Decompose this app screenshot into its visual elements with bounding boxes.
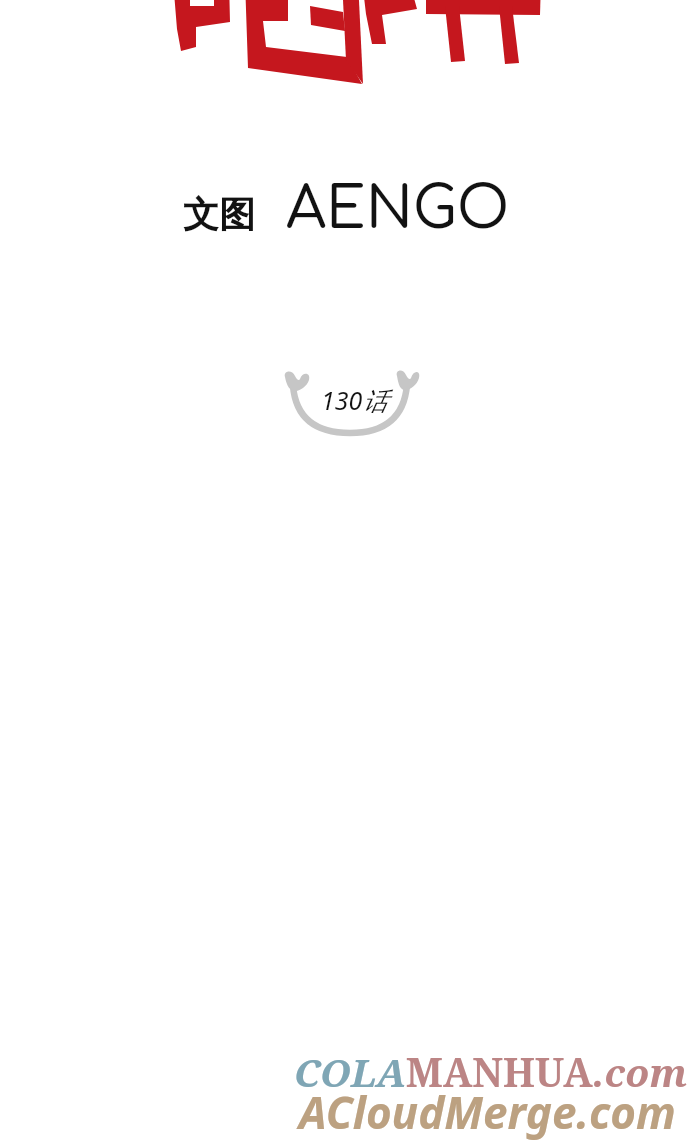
staticText: 130话 — [321, 383, 388, 417]
button[interactable]: 130话 — [283, 367, 423, 437]
staticText: ACloudMerge.com — [299, 1082, 676, 1142]
staticText: COLAMANHUA.com — [294, 1045, 688, 1098]
button[interactable]: Comic page, tap to show controls — [0, 0, 690, 1142]
button[interactable]: 文图 — [183, 174, 479, 238]
staticText: 文图 — [183, 192, 255, 237]
staticText: AENGO — [286, 178, 510, 242]
